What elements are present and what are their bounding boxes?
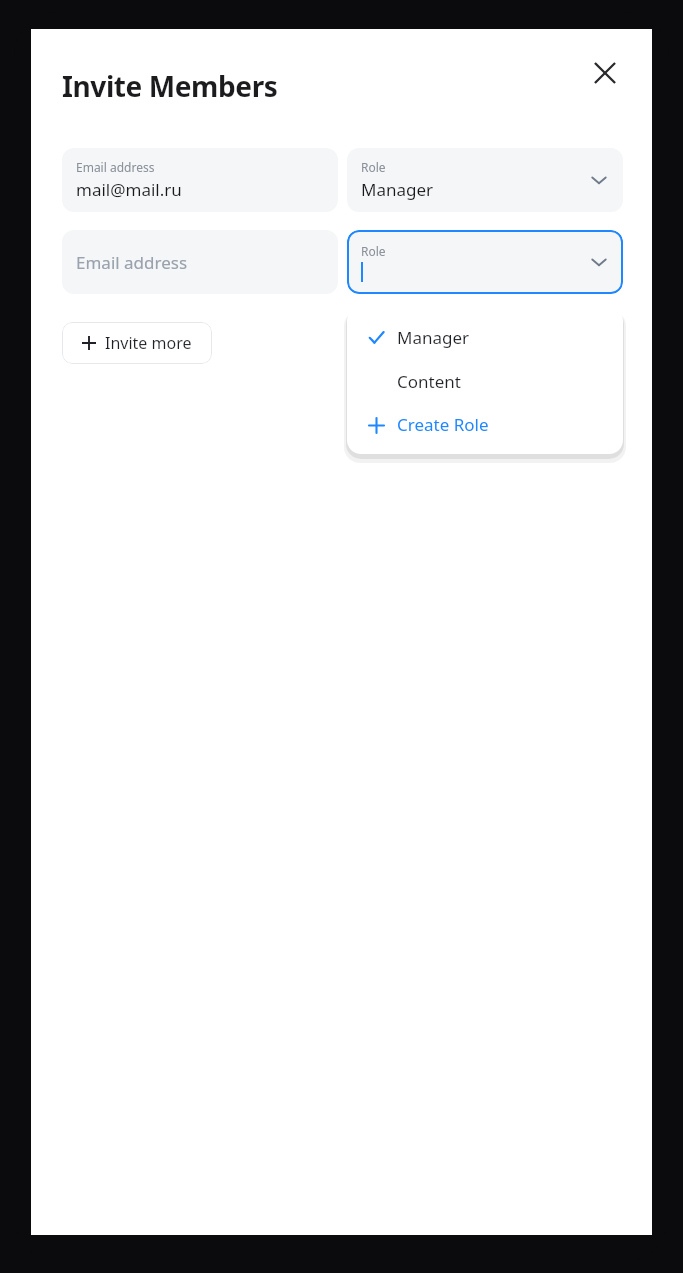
staticText: Manager (361, 178, 434, 201)
staticText: Content (397, 370, 461, 393)
staticText: Invite Members (62, 67, 278, 105)
button[interactable]: Invite more (62, 322, 212, 364)
button[interactable]: Role (347, 230, 623, 294)
button[interactable]: Role (347, 148, 623, 212)
button[interactable]: Create Role (347, 403, 623, 446)
staticText: Email address (76, 159, 155, 175)
staticText: Manager (397, 326, 470, 349)
staticText: Role (361, 159, 386, 175)
button[interactable]: Content (347, 359, 623, 403)
button[interactable]: Close (583, 51, 627, 95)
staticText: Email address (76, 251, 188, 274)
staticText: Create Role (397, 413, 489, 436)
button[interactable]: Email address (62, 230, 338, 294)
staticText: mail@mail.ru (76, 178, 182, 201)
staticText: Invite more (105, 332, 192, 354)
button[interactable]: Manager (347, 315, 623, 359)
button[interactable]: Email address (62, 148, 338, 212)
staticText: Role (361, 243, 386, 259)
